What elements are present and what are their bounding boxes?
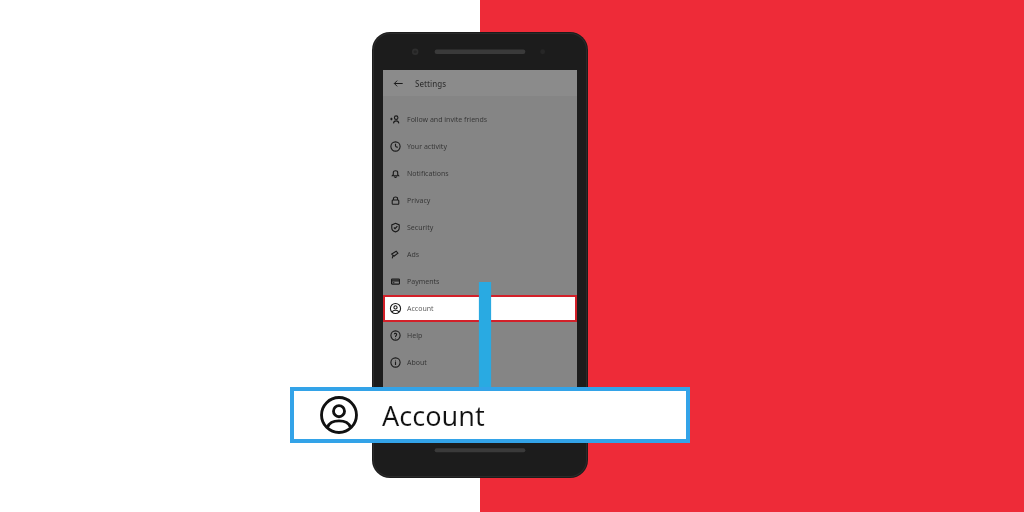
button[interactable]: Payments	[383, 268, 577, 295]
button[interactable]: Follow and invite friends	[383, 106, 577, 133]
staticText: Privacy	[407, 196, 431, 206]
button[interactable]: About	[383, 349, 577, 376]
button[interactable]: Ads	[383, 241, 577, 268]
staticText: Payments	[407, 277, 440, 287]
staticText: Settings	[415, 78, 447, 89]
staticText: Security	[407, 223, 434, 233]
staticText: About	[407, 358, 427, 368]
button[interactable]: Help	[383, 322, 577, 349]
button[interactable]: Back	[390, 75, 406, 91]
button[interactable]: Account	[385, 297, 575, 320]
staticText: Account	[382, 397, 485, 434]
staticText: Help	[407, 331, 423, 341]
button[interactable]: Your activity	[383, 133, 577, 160]
staticText: Follow and invite friends	[407, 115, 488, 125]
button[interactable]: Account	[294, 391, 686, 439]
staticText: Notifications	[407, 169, 449, 179]
button[interactable]: Security	[383, 214, 577, 241]
button[interactable]: Privacy	[383, 187, 577, 214]
staticText: Your activity	[407, 142, 447, 152]
staticText: Ads	[407, 250, 420, 260]
button[interactable]: Notifications	[383, 160, 577, 187]
staticText: Account	[407, 304, 434, 314]
